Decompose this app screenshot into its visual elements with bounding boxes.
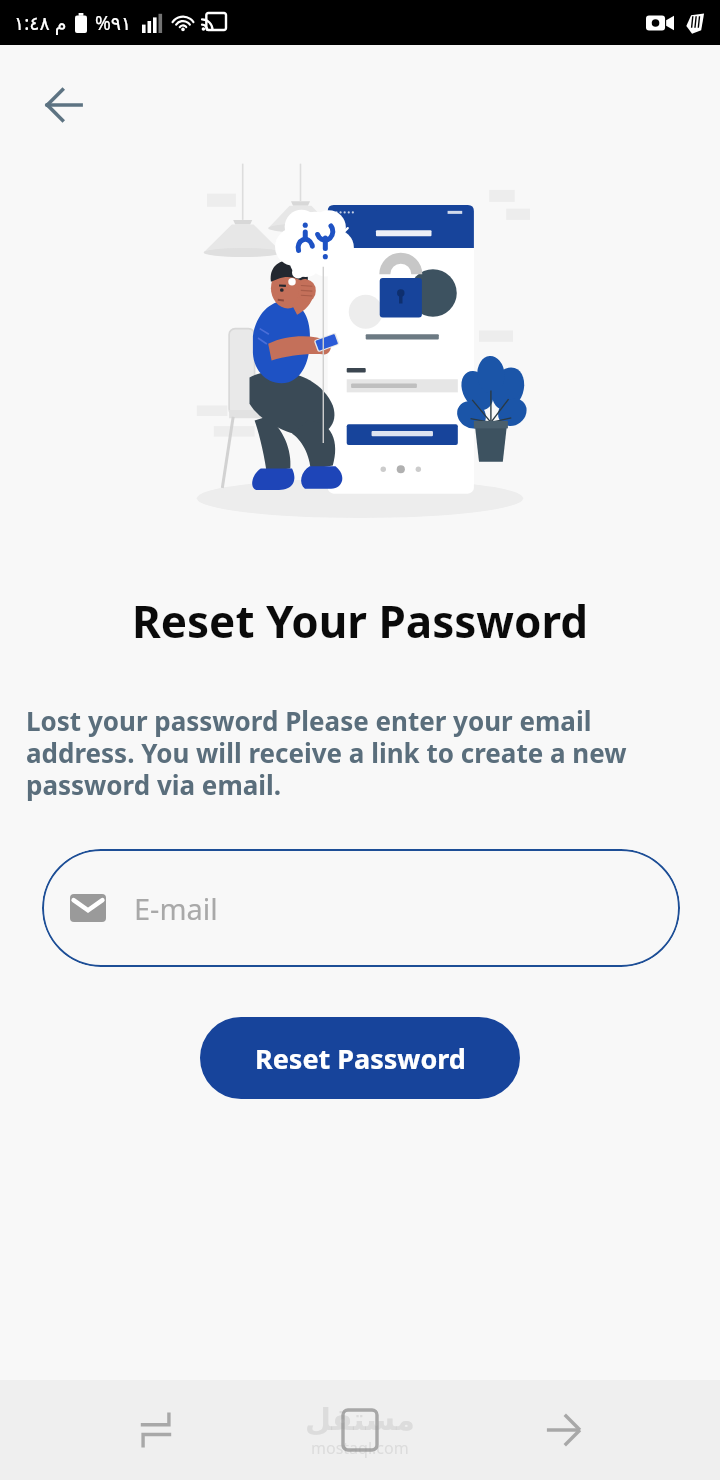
staticText: م ١:٤٨ (14, 10, 67, 36)
staticText: Lost your password Please enter your ema… (26, 703, 702, 803)
staticText: Reset Your Password (0, 591, 720, 651)
button[interactable]: Reset Password (200, 1017, 520, 1099)
staticText: %٩١ (95, 10, 132, 36)
staticText: مستقل (305, 1402, 415, 1437)
staticText: Reset Password (255, 1040, 466, 1077)
button[interactable]: Back (516, 1382, 612, 1478)
button[interactable]: E-mail (42, 849, 680, 967)
staticText: E-mail (134, 889, 218, 928)
button[interactable]: Home (312, 1382, 408, 1478)
button[interactable]: Recents (108, 1382, 204, 1478)
button[interactable]: Back (36, 77, 92, 133)
staticText: mostaql.com (311, 1437, 409, 1459)
